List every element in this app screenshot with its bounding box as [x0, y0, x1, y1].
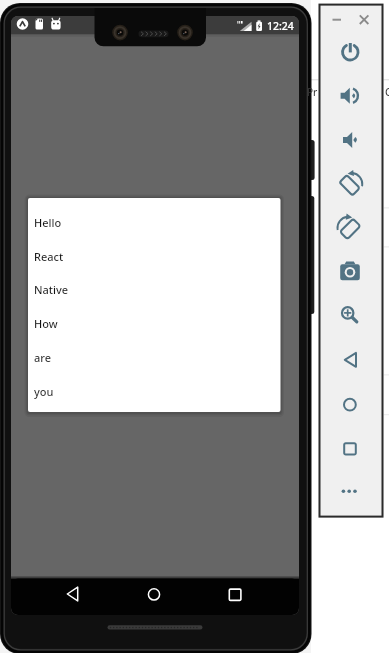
button[interactable]: [220, 580, 250, 608]
staticText: How: [34, 316, 58, 331]
staticText: Cl: [385, 85, 389, 99]
button[interactable]: [139, 580, 169, 608]
button[interactable]: [338, 217, 362, 241]
staticText: Hello: [34, 215, 62, 230]
button[interactable]: Hello: [34, 214, 94, 230]
button[interactable]: you: [34, 383, 94, 399]
button[interactable]: How: [34, 315, 94, 331]
button[interactable]: [338, 130, 362, 154]
staticText: Native: [34, 282, 69, 297]
staticText: are: [34, 350, 52, 365]
staticText: Pr: [307, 85, 318, 99]
button[interactable]: [338, 259, 362, 283]
button[interactable]: [338, 174, 362, 198]
button[interactable]: [338, 479, 362, 503]
staticText: you: [34, 384, 54, 399]
button[interactable]: React: [34, 248, 94, 264]
button[interactable]: Native: [34, 281, 94, 297]
button[interactable]: [338, 303, 362, 327]
button[interactable]: [329, 12, 345, 28]
button[interactable]: [338, 393, 362, 417]
staticText: React: [34, 249, 64, 264]
button[interactable]: [338, 85, 362, 109]
button[interactable]: [338, 437, 362, 461]
button[interactable]: [338, 348, 362, 372]
button[interactable]: are: [34, 349, 94, 365]
staticText: 12:24: [267, 19, 294, 33]
button[interactable]: [338, 40, 362, 64]
button[interactable]: [356, 12, 372, 28]
button[interactable]: [58, 580, 88, 608]
